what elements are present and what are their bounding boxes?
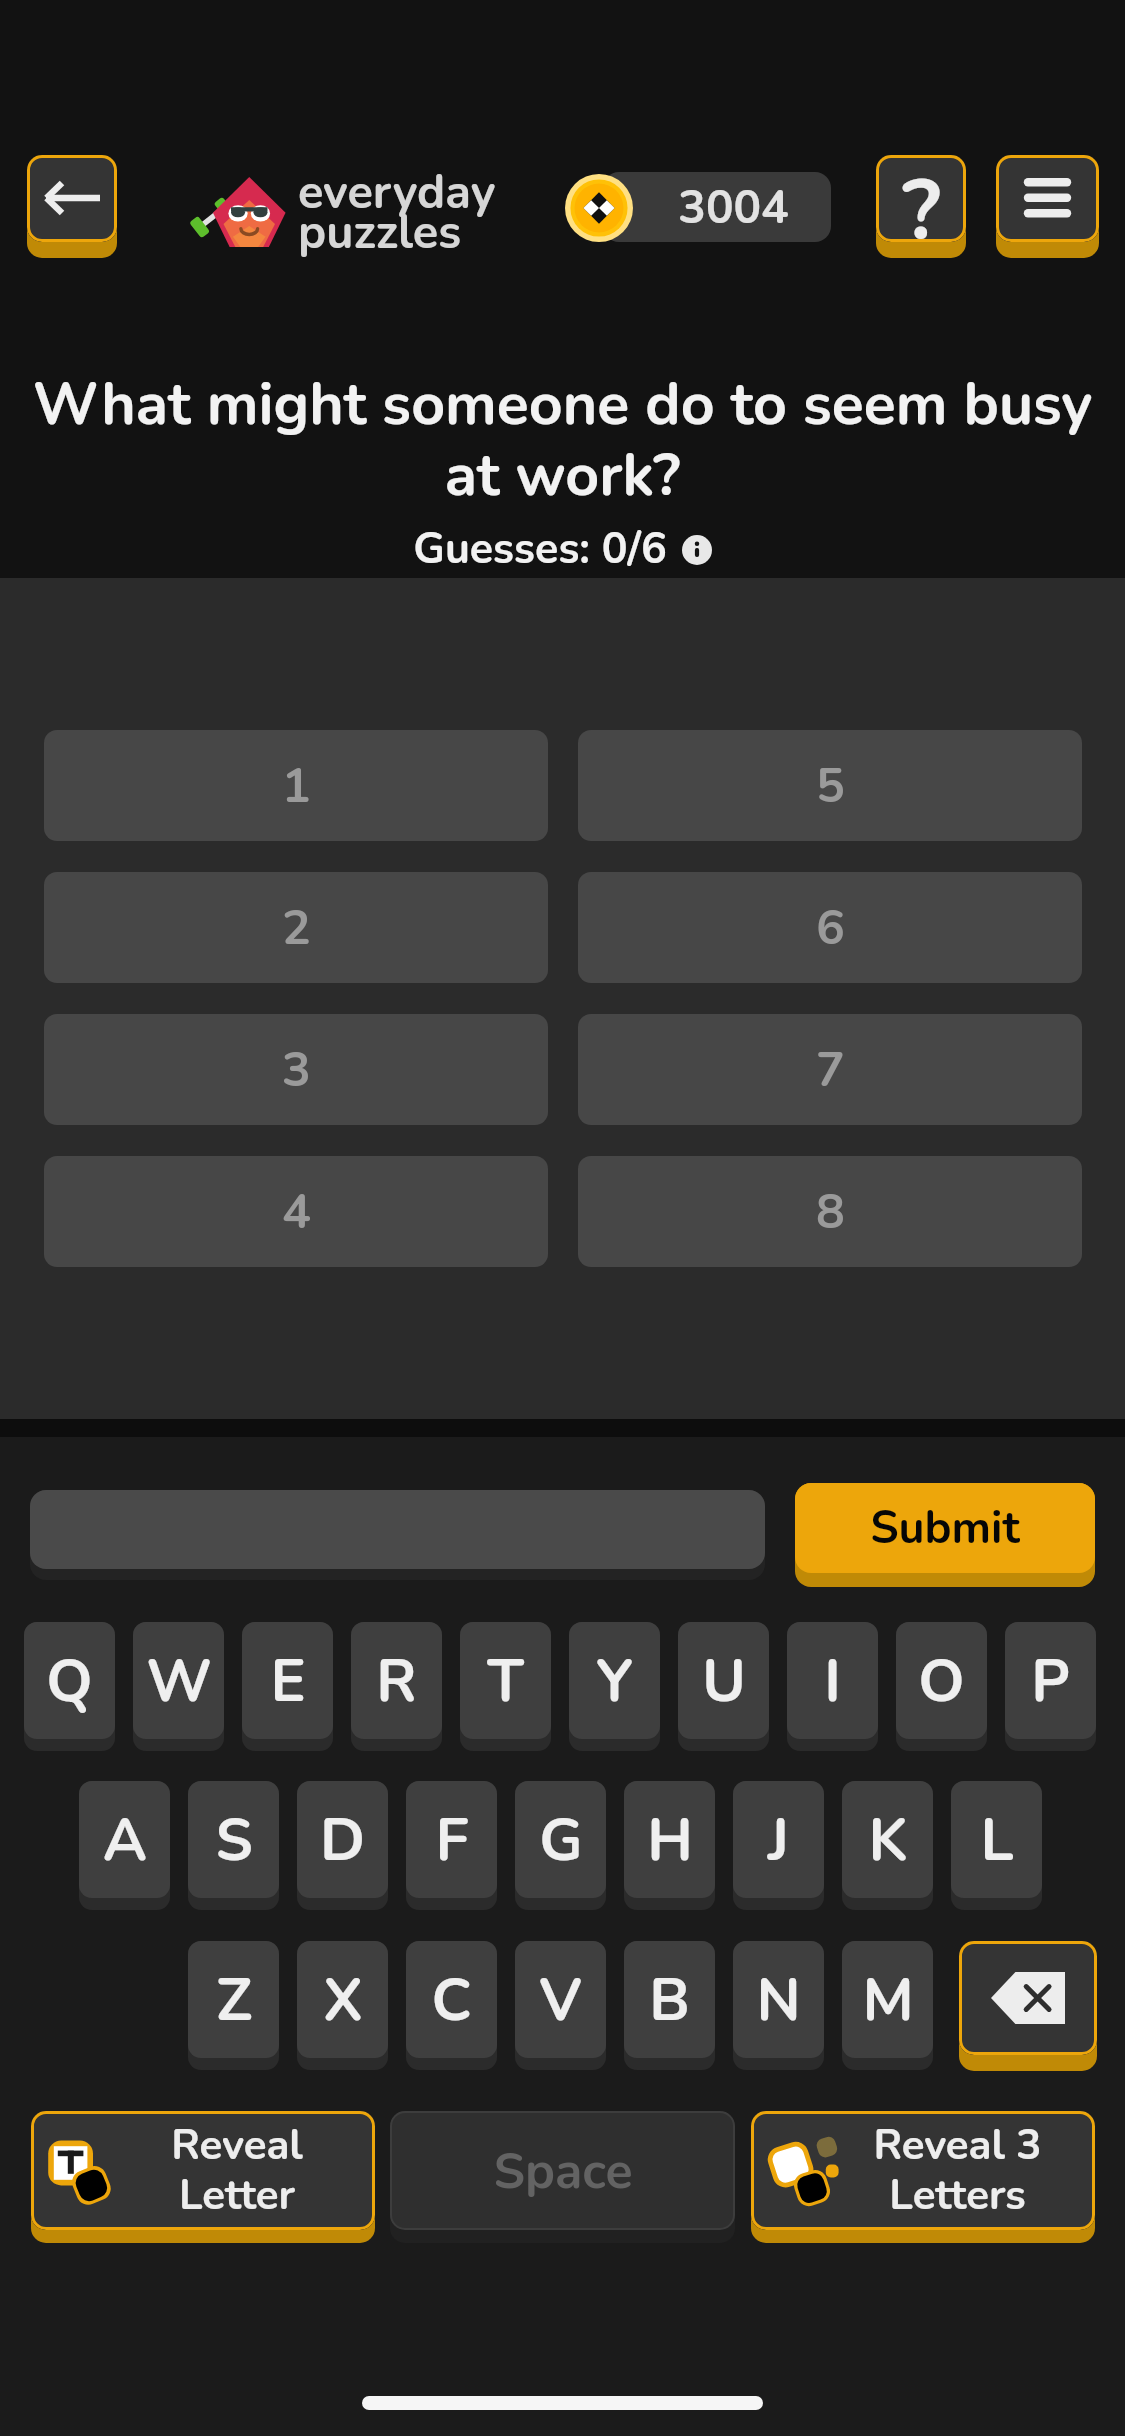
button[interactable]: 1	[44, 730, 548, 841]
staticText: L	[980, 1800, 1014, 1880]
button[interactable]: N	[733, 1941, 824, 2070]
staticText: F	[435, 1800, 469, 1880]
staticText: Y	[596, 1641, 633, 1721]
staticText: 3004	[678, 176, 789, 239]
button[interactable]: 3004	[603, 172, 831, 242]
staticText: T	[487, 1641, 524, 1721]
button[interactable]: W	[133, 1622, 224, 1751]
button[interactable]: J	[733, 1781, 824, 1910]
button[interactable]: Menu	[996, 155, 1099, 258]
button[interactable]: Backspace	[959, 1941, 1097, 2071]
button[interactable]: Submit	[795, 1483, 1095, 1587]
staticText: 2	[282, 895, 311, 960]
button[interactable]: Reveal Letter	[31, 2111, 375, 2243]
button[interactable]: U	[678, 1622, 769, 1751]
button[interactable]: K	[842, 1781, 933, 1910]
staticText: P	[1031, 1641, 1070, 1721]
button[interactable]: Q	[24, 1622, 115, 1751]
staticText: K	[868, 1800, 908, 1880]
button[interactable]: Y	[569, 1622, 660, 1751]
button[interactable]: I	[787, 1622, 878, 1751]
button[interactable]: Help	[876, 155, 966, 258]
staticText: Z	[216, 1960, 252, 2040]
staticText: Guesses: 0/6	[413, 520, 667, 579]
button[interactable]: H	[624, 1781, 715, 1910]
staticText: 4	[282, 1179, 311, 1244]
button[interactable]: O	[896, 1622, 987, 1751]
staticText: N	[756, 1960, 801, 2040]
button[interactable]: D	[297, 1781, 388, 1910]
staticText: 3	[282, 1037, 311, 1102]
staticText: U	[702, 1641, 746, 1721]
staticText: 1	[282, 753, 311, 818]
staticText: B	[649, 1960, 690, 2040]
button[interactable]: Info	[682, 535, 712, 565]
staticText: What might someone do to seem busy at wo…	[22, 364, 1103, 516]
staticText: C	[431, 1960, 472, 2040]
staticText: Submit	[870, 1498, 1020, 1559]
button[interactable]	[30, 1490, 765, 1580]
button[interactable]: 3	[44, 1014, 548, 1125]
staticText: M	[862, 1960, 914, 2040]
staticText: E	[270, 1641, 306, 1721]
button[interactable]: L	[951, 1781, 1042, 1910]
button[interactable]: G	[515, 1781, 606, 1910]
staticText: D	[320, 1800, 365, 1880]
button[interactable]: C	[406, 1941, 497, 2070]
button[interactable]: 5	[578, 730, 1082, 841]
button[interactable]: X	[297, 1941, 388, 2070]
button[interactable]: 7	[578, 1014, 1082, 1125]
button[interactable]: Z	[188, 1941, 279, 2070]
staticText: Q	[46, 1641, 93, 1721]
staticText: Space	[493, 2137, 633, 2205]
button[interactable]: B	[624, 1941, 715, 2070]
button[interactable]: E	[242, 1622, 333, 1751]
staticText: ?	[902, 155, 941, 240]
staticText: 6	[816, 895, 845, 960]
staticText: R	[376, 1641, 417, 1721]
staticText: W	[146, 1641, 212, 1721]
staticText: O	[918, 1641, 965, 1721]
button[interactable]: 2	[44, 872, 548, 983]
staticText: G	[539, 1800, 583, 1880]
staticText: 8	[816, 1179, 845, 1244]
button[interactable]: P	[1005, 1622, 1096, 1751]
button[interactable]: Reveal 3 Letters	[751, 2111, 1095, 2243]
staticText: A	[103, 1800, 147, 1880]
staticText: S	[215, 1800, 253, 1880]
button[interactable]: R	[351, 1622, 442, 1751]
staticText: Reveal 3 Letters	[873, 2117, 1042, 2224]
staticText: 7	[816, 1037, 845, 1102]
button[interactable]: F	[406, 1781, 497, 1910]
staticText: I	[824, 1641, 841, 1721]
button[interactable]: 4	[44, 1156, 548, 1267]
button[interactable]: Space	[390, 2111, 735, 2243]
staticText: X	[323, 1960, 363, 2040]
button[interactable]: 6	[578, 872, 1082, 983]
staticText: Reveal Letter	[171, 2117, 303, 2224]
button[interactable]: M	[842, 1941, 933, 2070]
button[interactable]: V	[515, 1941, 606, 2070]
staticText: V	[539, 1960, 582, 2040]
button[interactable]: S	[188, 1781, 279, 1910]
staticText: J	[768, 1800, 789, 1880]
button[interactable]: Back	[27, 155, 117, 258]
button[interactable]: A	[79, 1781, 170, 1910]
staticText: H	[647, 1800, 693, 1880]
staticText: 5	[816, 753, 845, 818]
staticText: everyday puzzles	[298, 160, 496, 264]
button[interactable]: T	[460, 1622, 551, 1751]
button[interactable]: 8	[578, 1156, 1082, 1267]
